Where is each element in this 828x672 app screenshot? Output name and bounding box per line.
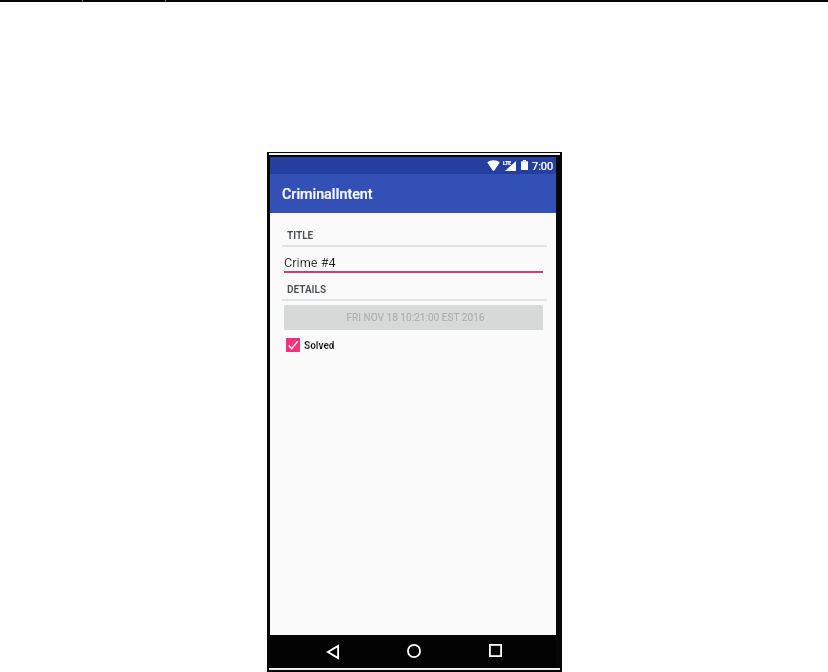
staticText: Crime #4	[284, 255, 336, 270]
staticText: 7:00	[532, 160, 554, 173]
button[interactable]: Home	[400, 635, 428, 668]
button[interactable]: Back	[319, 635, 347, 668]
staticText: CriminalIntent	[282, 186, 373, 203]
button[interactable]: FRI NOV 18 10:21:00 EST 2016	[284, 305, 543, 330]
button[interactable]: Crime #4	[270, 250, 556, 270]
staticText: DETAILS	[287, 284, 327, 296]
staticText: Solved	[304, 340, 335, 352]
staticText: LTE	[503, 160, 512, 166]
staticText: TITLE	[287, 230, 314, 242]
button[interactable]: Solved	[286, 338, 335, 352]
button[interactable]: CriminalIntent	[270, 174, 556, 213]
staticText: FRI NOV 18 10:21:00 EST 2016	[346, 312, 485, 324]
button[interactable]: Recent apps	[481, 635, 509, 668]
